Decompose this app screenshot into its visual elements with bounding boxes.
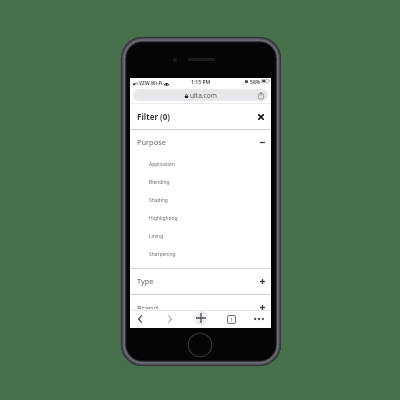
button[interactable]: Forward (163, 312, 177, 326)
button[interactable]: ulta.com (133, 89, 268, 101)
staticText: Filter (0) (137, 111, 171, 122)
staticText: 1 (230, 316, 233, 323)
staticText: 58% (250, 79, 261, 86)
button[interactable]: Filter (0) (130, 104, 271, 129)
button[interactable]: Purpose (130, 130, 271, 155)
button[interactable]: Sharpening (130, 246, 271, 264)
button[interactable]: Blending (130, 174, 271, 192)
button[interactable]: Highlighting (130, 210, 271, 228)
button[interactable]: Back (133, 312, 147, 326)
button[interactable]: Share (256, 91, 265, 100)
button[interactable]: Collapse Purpose (258, 138, 267, 147)
staticText: Brand (137, 303, 158, 309)
staticText: Application (149, 161, 175, 168)
button[interactable]: New tab (194, 311, 208, 325)
button[interactable]: Type (130, 269, 271, 294)
button[interactable]: Tabs (224, 312, 238, 326)
button[interactable]: Application (130, 156, 271, 174)
button[interactable]: Brand (130, 304, 271, 310)
staticText: Sharpening (149, 251, 176, 258)
button[interactable]: Expand Type (258, 277, 267, 286)
staticText: VZW Wi-Fi (139, 80, 163, 87)
button[interactable]: Expand Brand (258, 304, 267, 310)
staticText: 1:15 PM (191, 79, 211, 86)
staticText: Lining (149, 233, 164, 240)
staticText: Shading (149, 197, 168, 204)
staticText: Purpose (137, 137, 166, 147)
button[interactable]: Close (256, 112, 265, 121)
button[interactable]: Lining (130, 228, 271, 246)
staticText: Highlighting (149, 215, 178, 222)
staticText: ulta.com (190, 91, 217, 100)
staticText: Blending (149, 179, 170, 186)
button[interactable]: Shading (130, 192, 271, 210)
staticText: Type (137, 276, 154, 286)
button[interactable]: More (252, 312, 266, 326)
